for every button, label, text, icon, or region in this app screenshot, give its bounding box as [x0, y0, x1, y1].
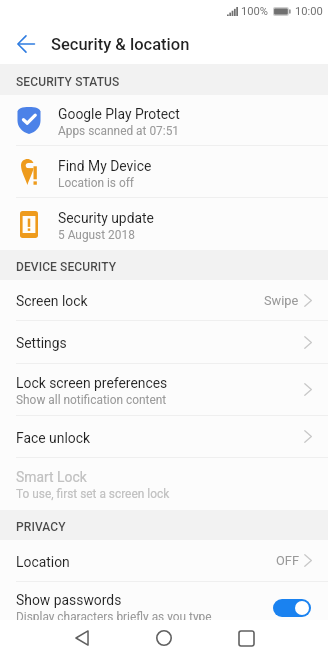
staticText: Show all notification content — [16, 393, 167, 407]
staticText: Security update — [58, 210, 154, 226]
button[interactable]: Smart Lock — [0, 458, 328, 510]
staticText: Face unlock — [16, 430, 91, 446]
button[interactable]: Security update — [0, 198, 328, 250]
staticText: Apps scanned at 07:51 — [58, 124, 180, 138]
button[interactable]: Face unlock — [0, 416, 328, 457]
button[interactable]: Settings — [0, 321, 328, 363]
staticText: 5 August 2018 — [58, 228, 135, 242]
button[interactable]: Show passwords toggle — [273, 599, 311, 617]
button[interactable]: Home — [123, 620, 205, 656]
staticText: Settings — [16, 335, 67, 351]
button[interactable]: Location — [0, 540, 328, 581]
staticText: To use, first set a screen lock — [16, 487, 170, 501]
staticText: PRIVACY — [16, 520, 66, 534]
staticText: Location — [16, 554, 70, 570]
staticText: 100% — [241, 5, 269, 18]
button[interactable]: Back — [41, 620, 123, 656]
staticText: Security & location — [51, 35, 190, 54]
staticText: Show passwords — [16, 592, 122, 608]
staticText: Swipe — [264, 293, 299, 308]
button[interactable]: Lock screen preferences — [0, 364, 328, 415]
button[interactable]: Screen lock — [0, 280, 328, 320]
staticText: Display characters briefly as you type — [16, 610, 212, 620]
button[interactable]: Show passwords — [0, 589, 328, 620]
staticText: Google Play Protect — [58, 106, 180, 122]
staticText: Find My Device — [58, 158, 152, 174]
staticText: OFF — [276, 553, 299, 568]
button[interactable]: Google Play Protect — [0, 95, 328, 145]
button[interactable]: Find My Device — [0, 146, 328, 197]
button[interactable]: Recents — [205, 620, 287, 656]
staticText: Screen lock — [16, 293, 88, 309]
staticText: DEVICE SECURITY — [16, 260, 117, 274]
staticText: Lock screen preferences — [16, 375, 168, 391]
staticText: Smart Lock — [16, 469, 87, 485]
button[interactable]: Back — [8, 26, 44, 62]
staticText: 10:00 — [295, 5, 323, 18]
staticText: Location is off — [58, 176, 134, 190]
staticText: SECURITY STATUS — [16, 75, 120, 89]
